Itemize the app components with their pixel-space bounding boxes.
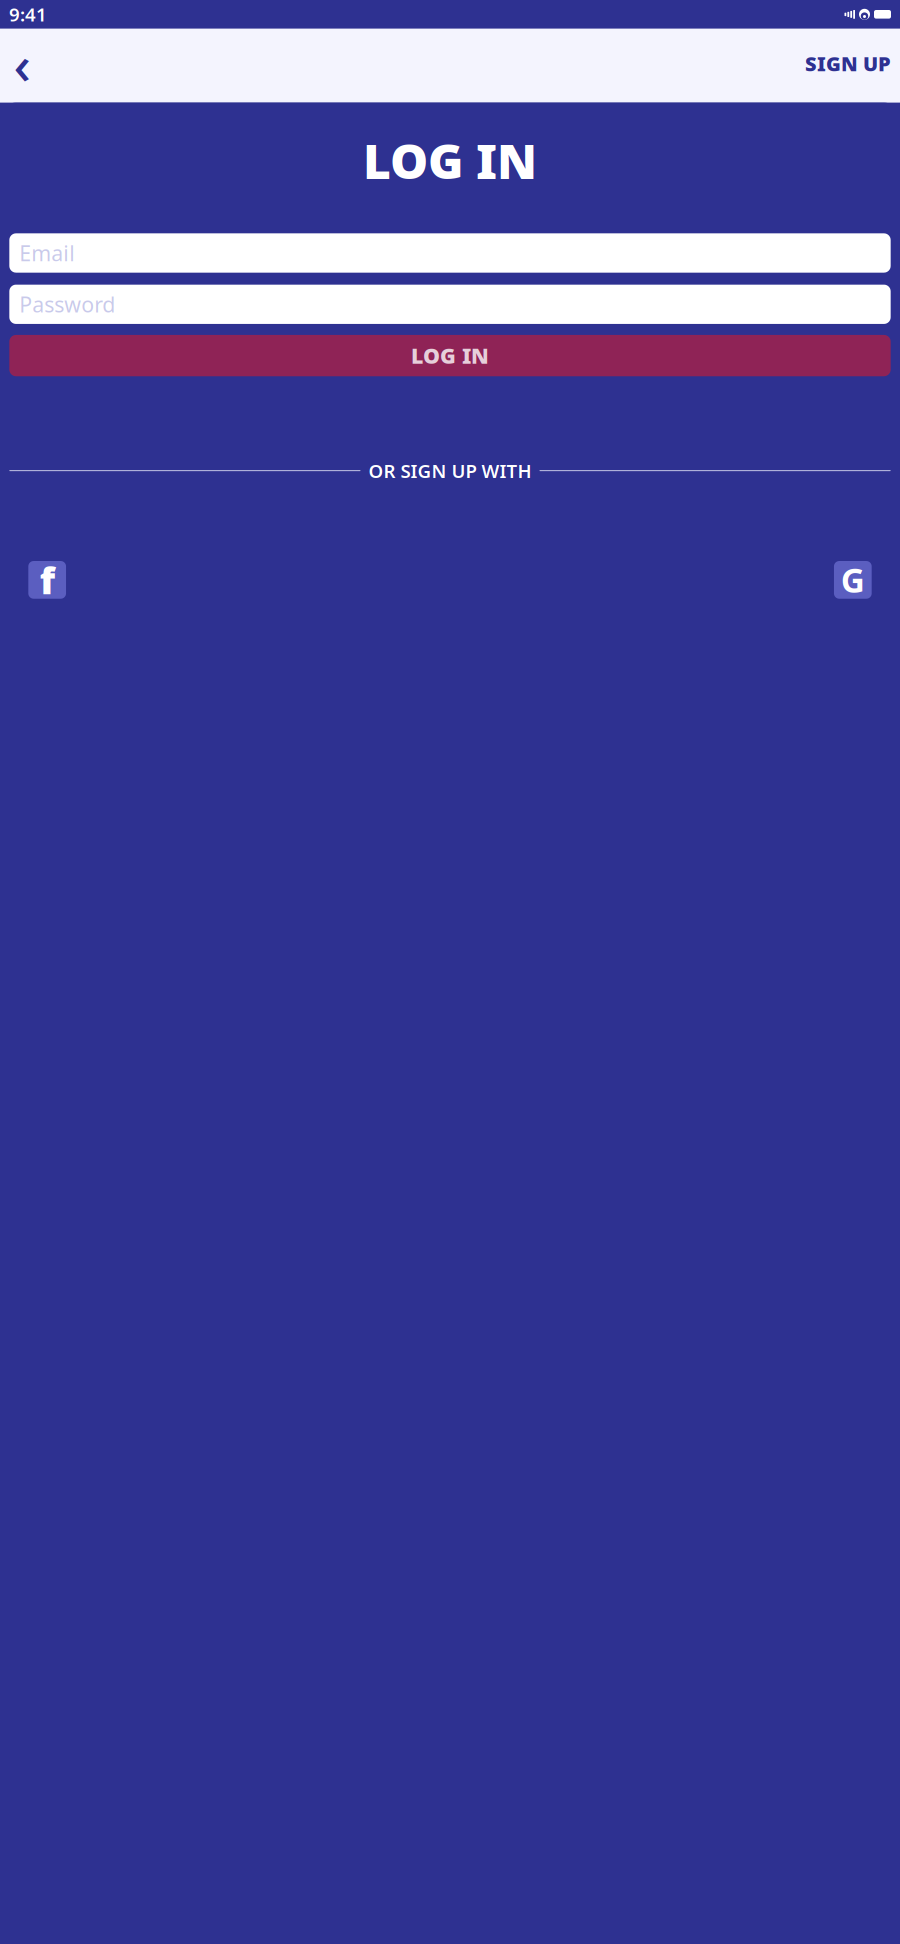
staticText: 9:41 [9, 2, 47, 27]
staticText: ‹ [13, 28, 30, 99]
button[interactable]: SIGN UP [805, 50, 891, 77]
staticText: SIGN UP [805, 50, 891, 77]
button[interactable]: LOG IN [9, 335, 891, 376]
button[interactable]: Sign up with Facebook [28, 561, 66, 599]
staticText: LOG IN [411, 341, 489, 370]
staticText: f [40, 555, 55, 605]
staticText: OR SIGN UP WITH [368, 458, 531, 483]
staticText: G [841, 558, 865, 602]
button[interactable]: Sign up with Google [834, 561, 872, 599]
staticText: Email [19, 239, 75, 267]
staticText: LOG IN [363, 129, 537, 192]
button[interactable]: Back [5, 47, 39, 81]
staticText: Password [19, 290, 115, 318]
